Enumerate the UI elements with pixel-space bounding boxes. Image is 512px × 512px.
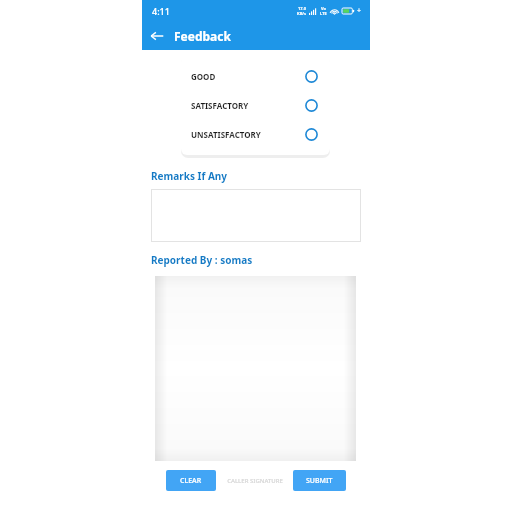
button[interactable]: GOOD — [181, 62, 330, 91]
button[interactable]: UNSATISFACTORY — [181, 120, 330, 149]
staticText: SUBMIT — [306, 476, 333, 486]
button[interactable] — [151, 189, 361, 242]
staticText: SATISFACTORY — [191, 100, 249, 111]
staticText: Vo — [321, 6, 327, 11]
staticText: Remarks If Any — [151, 169, 228, 183]
staticText: + — [357, 6, 362, 16]
staticText: 4:11 — [152, 5, 170, 17]
button[interactable]: SUBMIT — [293, 470, 346, 491]
staticText: UNSATISFACTORY — [191, 129, 261, 140]
button[interactable]: Back — [146, 25, 168, 47]
button[interactable]: SATISFACTORY — [181, 91, 330, 120]
staticText: CLEAR — [180, 476, 202, 486]
staticText: Feedback — [174, 28, 231, 44]
button[interactable]: CLEAR — [166, 470, 216, 491]
staticText: Reported By : somas — [151, 253, 253, 267]
staticText: LTE — [320, 11, 327, 16]
staticText: GOOD — [191, 71, 216, 82]
staticText: 17.0 — [298, 6, 306, 11]
button[interactable]: CALLER SIGNATURE — [227, 477, 283, 485]
button[interactable]: Signature pad — [155, 276, 356, 461]
staticText: KB/s — [297, 11, 306, 16]
